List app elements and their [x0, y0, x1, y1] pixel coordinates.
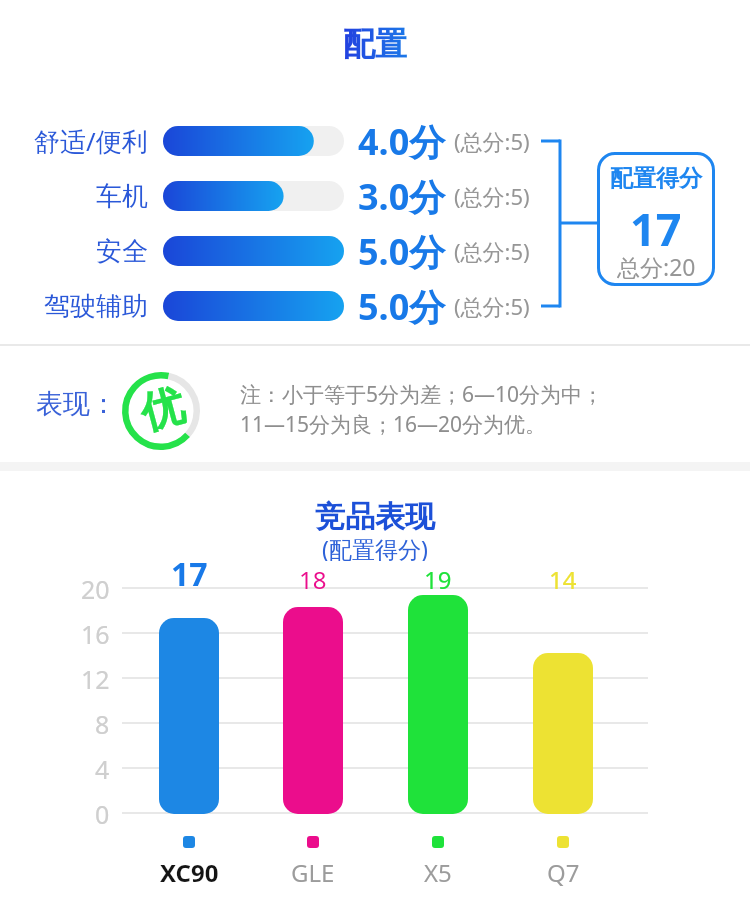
staticText: 驾驶辅助	[44, 290, 148, 323]
staticText: 舒适/便利	[34, 123, 148, 159]
button[interactable]: Q7	[513, 856, 613, 888]
staticText: (总分:5)	[454, 181, 530, 211]
staticText: 3.0分	[358, 172, 446, 220]
staticText: 8	[95, 707, 110, 739]
staticText: 配置得分	[610, 164, 702, 193]
staticText: 16	[81, 617, 110, 649]
staticText: 5.0分	[358, 282, 446, 330]
staticText: 4	[95, 752, 110, 784]
staticText: GLE	[291, 856, 335, 888]
staticText: 17	[171, 552, 208, 590]
staticText: 注：小于等于5分为差；6—10分为中；	[240, 380, 604, 409]
staticText: 14	[549, 563, 577, 591]
staticText: 4.0分	[358, 117, 446, 165]
staticText: XC90	[160, 856, 219, 888]
staticText: 12	[81, 662, 110, 694]
staticText: 17	[630, 198, 682, 254]
staticText: 配置	[343, 24, 407, 64]
staticText: 5.0分	[358, 227, 446, 275]
button[interactable]: X5	[388, 856, 488, 888]
button[interactable]: XC90	[139, 856, 239, 888]
staticText: (总分:5)	[454, 236, 530, 266]
staticText: 11—15分为良；16—20分为优。	[240, 410, 547, 439]
staticText: 优	[135, 378, 190, 441]
staticText: (总分:5)	[454, 291, 530, 321]
staticText: 总分:20	[617, 251, 696, 281]
staticText: X5	[424, 856, 452, 888]
staticText: 19	[424, 563, 452, 591]
staticText: 竞品表现	[315, 498, 435, 536]
staticText: 安全	[96, 235, 148, 268]
staticText: 0	[95, 797, 110, 829]
staticText: (总分:5)	[454, 126, 530, 156]
staticText: 表现：	[36, 387, 117, 421]
staticText: 20	[81, 572, 110, 604]
button[interactable]: GLE	[263, 856, 363, 888]
staticText: 18	[299, 563, 327, 591]
staticText: 车机	[96, 180, 148, 213]
staticText: (配置得分)	[322, 533, 428, 561]
staticText: Q7	[547, 856, 580, 888]
